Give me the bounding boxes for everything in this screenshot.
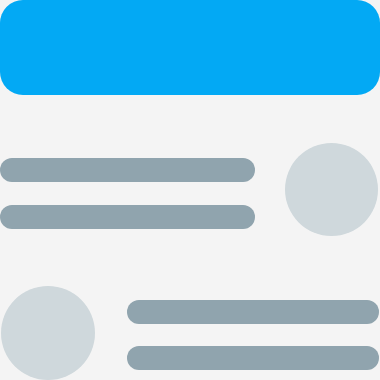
button[interactable]: List item 1 (0, 143, 380, 236)
button[interactable]: Thumbnail 1 (285, 143, 378, 236)
button[interactable]: App bar (0, 0, 380, 95)
button[interactable]: Thumbnail 2 (1, 286, 95, 380)
button[interactable]: List item 2 (0, 285, 380, 380)
